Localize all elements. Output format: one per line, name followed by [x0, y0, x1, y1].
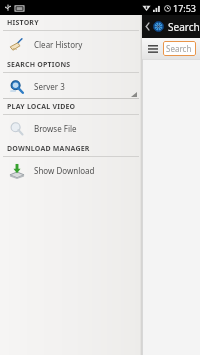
- staticText: SEARCH OPTIONS: [7, 60, 71, 70]
- staticText: Clear History: [34, 39, 83, 50]
- button[interactable]: Search: [163, 41, 196, 56]
- button[interactable]: Menu: [146, 42, 159, 55]
- button[interactable]: Up, Search: [142, 15, 200, 38]
- staticText: Search: [166, 43, 192, 54]
- staticText: HISTORY: [7, 18, 39, 28]
- staticText: Search…: [168, 20, 200, 34]
- staticText: Show Download: [34, 165, 95, 176]
- button[interactable]: Browse File: [0, 115, 142, 141]
- staticText: PLAY LOCAL VIDEO: [7, 102, 76, 112]
- button[interactable]: Server 3: [0, 73, 142, 99]
- staticText: Server 3: [34, 81, 65, 92]
- staticText: 17:53: [173, 2, 197, 14]
- staticText: DOWNLOAD MANAGER: [7, 144, 90, 154]
- button[interactable]: Clear History: [0, 31, 142, 57]
- button[interactable]: Show Download: [0, 157, 142, 183]
- staticText: Browse File: [34, 123, 77, 134]
